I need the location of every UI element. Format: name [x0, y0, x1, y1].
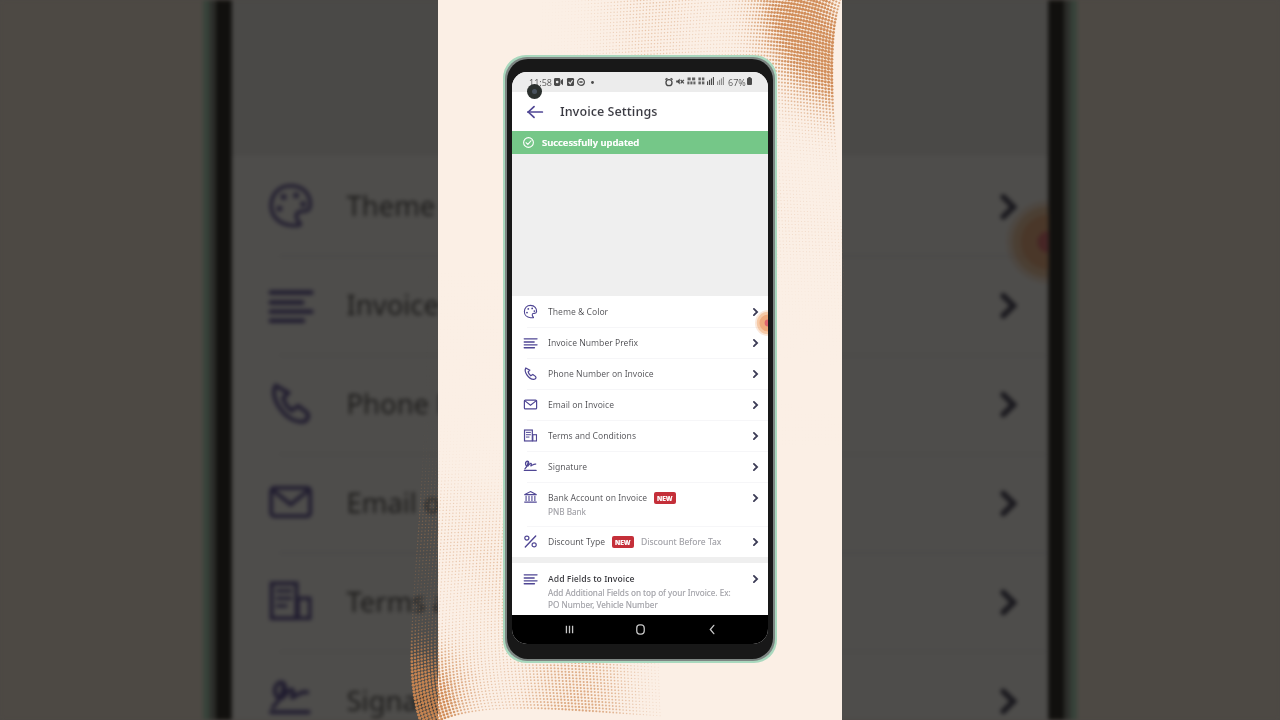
- staticText: 11:58: [529, 76, 553, 88]
- button[interactable]: Email on Invoice: [232, 452, 1048, 551]
- staticText: Invoice Number Prefix: [548, 337, 639, 349]
- staticText: Successfully updated: [542, 136, 640, 149]
- button[interactable]: Add Fields to Invoice: [512, 563, 768, 613]
- button[interactable]: Terms and Conditions: [232, 551, 1048, 650]
- button[interactable]: Theme & Color: [512, 296, 768, 327]
- staticText: Email on Invoice: [346, 484, 560, 523]
- staticText: Bank Account on Invoice: [548, 492, 648, 504]
- staticText: Theme & Color: [548, 306, 609, 318]
- staticText: Phone Number on Invoice: [548, 368, 654, 380]
- button[interactable]: Invoice Number Prefix: [232, 255, 1048, 354]
- staticText: Terms and Conditions: [346, 583, 630, 622]
- button[interactable]: Theme & Color: [232, 156, 1048, 255]
- button[interactable]: Home: [625, 615, 655, 644]
- button[interactable]: Recents: [554, 615, 584, 644]
- staticText: 67%: [728, 76, 746, 88]
- button[interactable]: Bank Account on Invoice: [512, 482, 768, 526]
- staticText: Invoice Settings: [560, 103, 658, 120]
- button[interactable]: Back: [521, 98, 549, 126]
- staticText: PNB Bank: [548, 506, 586, 517]
- staticText: NEW: [657, 494, 673, 503]
- staticText: NEW: [615, 538, 631, 547]
- button[interactable]: Invoice Number Prefix: [512, 327, 768, 358]
- button[interactable]: Signature: [512, 451, 768, 482]
- staticText: Add Additional Fields on top of your Inv…: [548, 587, 731, 610]
- staticText: Terms and Conditions: [548, 430, 637, 442]
- button[interactable]: Signature: [232, 650, 1048, 720]
- button[interactable]: Email on Invoice: [512, 389, 768, 420]
- staticText: Theme & Color: [346, 188, 541, 226]
- button[interactable]: Back: [697, 615, 727, 644]
- staticText: Signature: [548, 461, 587, 473]
- staticText: Email on Invoice: [548, 399, 615, 411]
- staticText: Add Fields to Invoice: [548, 573, 635, 585]
- staticText: Invoice Number Prefix: [346, 287, 637, 325]
- staticText: Discount Type: [548, 536, 606, 548]
- button[interactable]: Phone Number on Invoice: [232, 354, 1048, 452]
- button[interactable]: Discount Type: [512, 526, 768, 557]
- button[interactable]: Phone Number on Invoice: [512, 358, 768, 389]
- staticText: Discount Before Tax: [641, 536, 722, 548]
- staticText: Signature: [346, 682, 471, 720]
- button[interactable]: Terms and Conditions: [512, 420, 768, 451]
- staticText: Phone Number on Invoice: [346, 385, 685, 424]
